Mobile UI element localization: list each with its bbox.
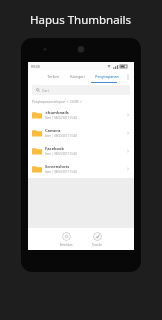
staticText: Hapus Thumbnails — [30, 12, 132, 28]
staticText: Facebook — [45, 146, 65, 151]
staticText: Item | 08/03/2017 01:40 — [45, 134, 77, 138]
staticText: Cari — [42, 88, 49, 93]
button[interactable]: .thumbnails — [28, 106, 134, 124]
staticText: .thumbnails — [45, 110, 69, 115]
button[interactable]: Facebook — [28, 142, 134, 160]
staticText: 09:30 — [31, 64, 40, 69]
button[interactable]: Transfer — [85, 232, 109, 247]
button[interactable]: Terkini — [40, 70, 65, 83]
button[interactable]: More options — [124, 70, 132, 83]
button[interactable]: Camera — [28, 124, 134, 142]
button[interactable]: Kategori — [65, 70, 90, 83]
staticText: Kategori — [70, 74, 85, 79]
staticText: Item | 08/03/2017 01:40 — [45, 170, 77, 174]
staticText: Transfer — [85, 243, 109, 247]
button[interactable]: Penyimpanan — [90, 70, 124, 83]
staticText: Penyimpanan telepon — [32, 100, 65, 104]
staticText: Item | 08/03/2017 01:40 — [45, 116, 77, 120]
button[interactable]: Screenshots — [28, 160, 134, 178]
staticText: Screenshots — [45, 164, 70, 169]
button[interactable]: Clean up — [54, 232, 78, 247]
button[interactable]: Cari — [32, 85, 130, 95]
staticText: Terkini — [47, 74, 59, 79]
staticText: Camera — [45, 128, 61, 133]
staticText: Bersihkan — [54, 243, 78, 247]
staticText: Penyimpanan — [95, 74, 119, 79]
staticText: Item | 08/03/2017 01:40 — [45, 152, 77, 156]
staticText: > DCIM > — [65, 100, 82, 104]
